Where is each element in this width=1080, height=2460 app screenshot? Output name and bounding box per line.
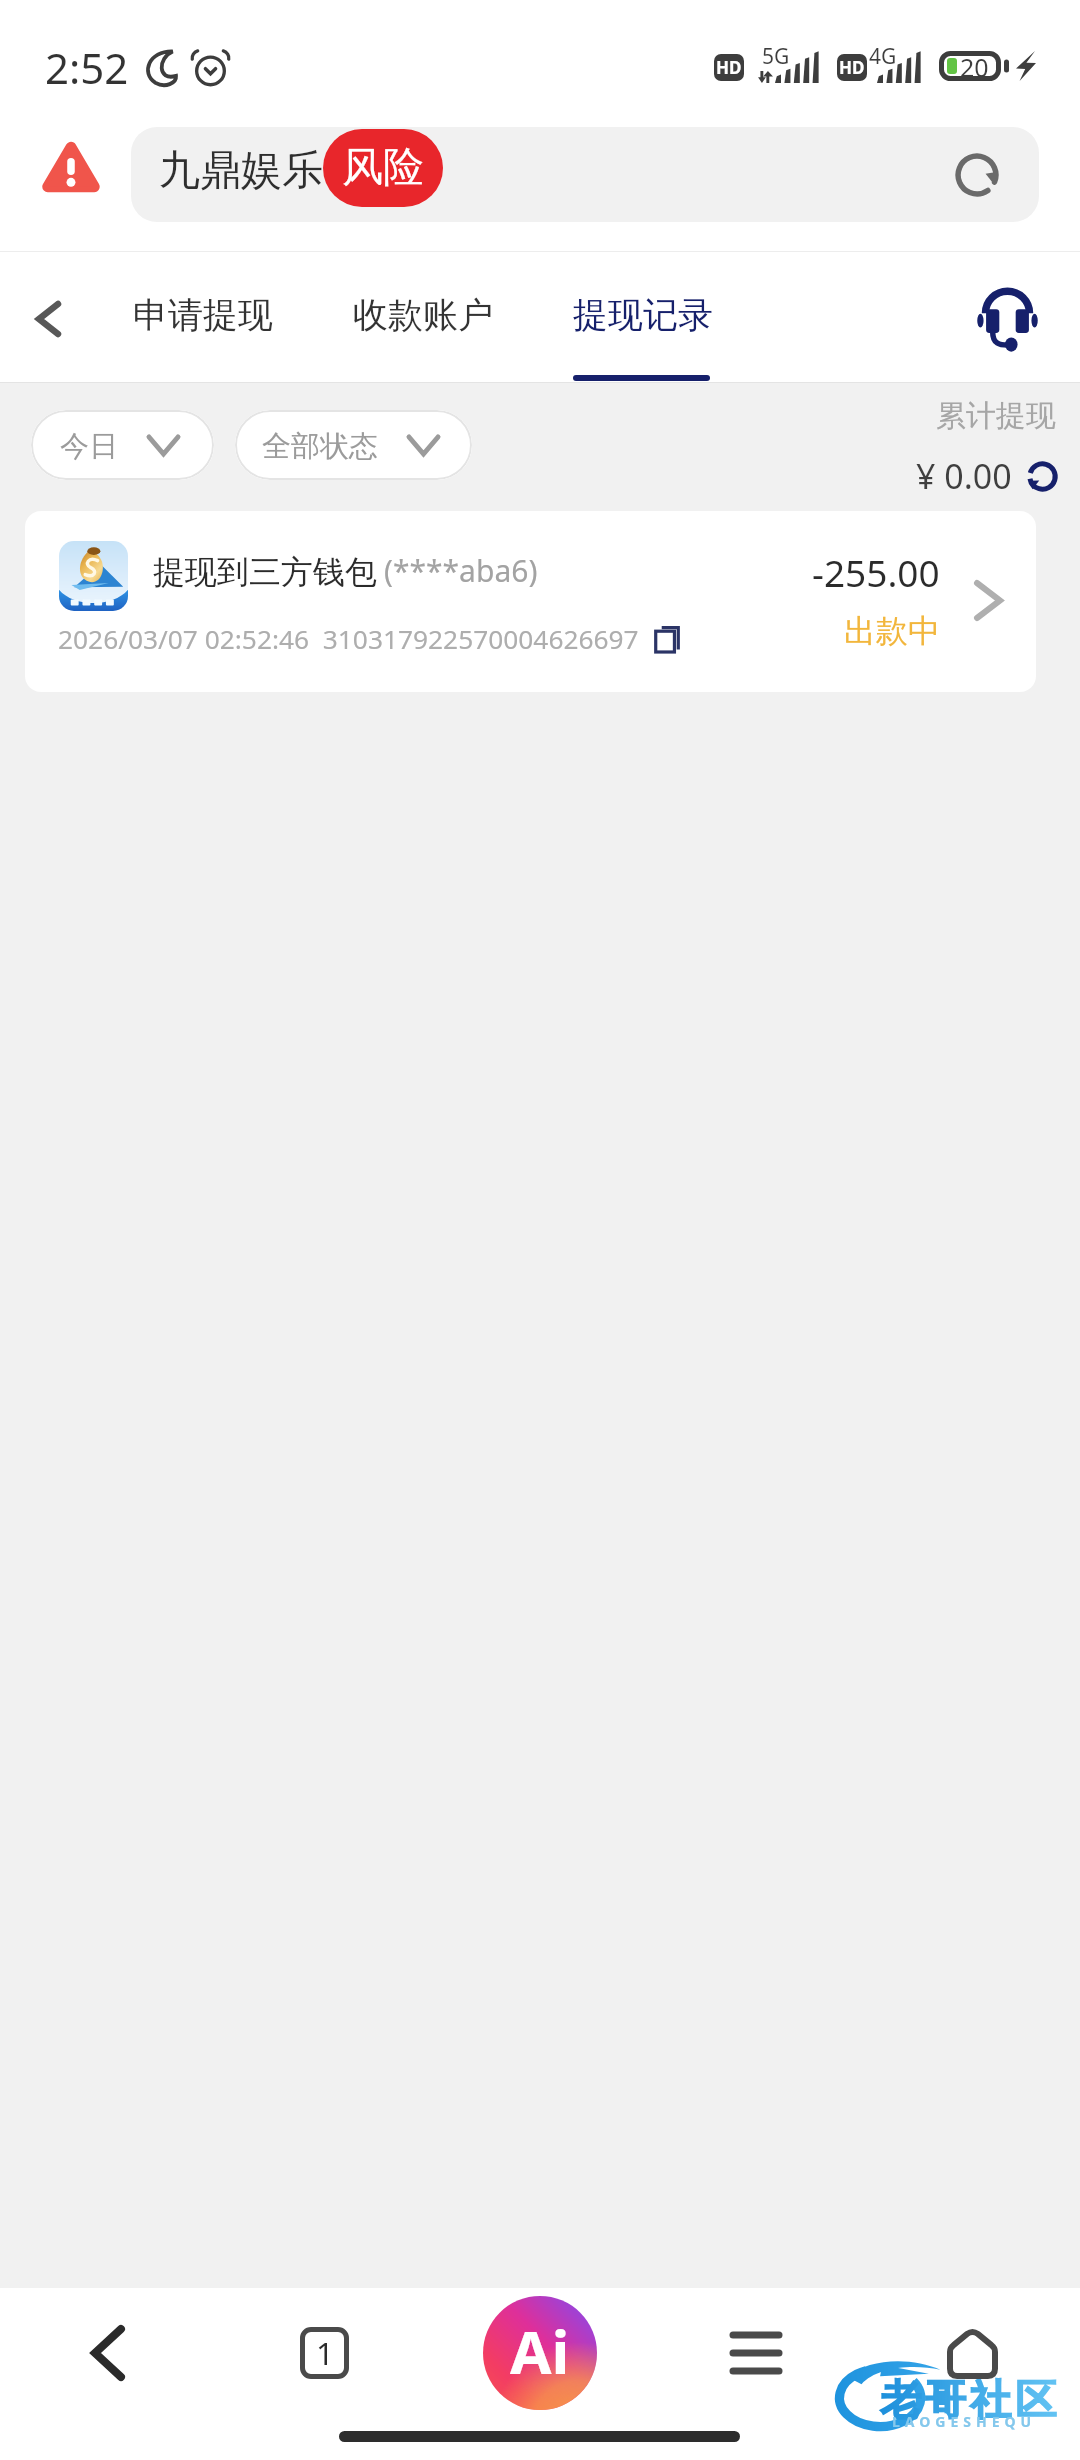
button[interactable]: 提现记录 <box>573 293 713 337</box>
button[interactable]: Menu <box>648 2288 864 2418</box>
button[interactable]: 申请提现 <box>133 293 273 337</box>
staticText: 全部状态 <box>262 428 378 465</box>
staticText: LAOGESHEQU <box>892 2412 1037 2431</box>
staticText: Ai <box>510 2310 570 2392</box>
staticText: (****aba6) <box>384 550 538 591</box>
staticText: 提现记录 <box>573 293 713 337</box>
staticText: 1 <box>316 2332 334 2374</box>
staticText: 今日 <box>60 428 118 465</box>
button[interactable]: Refresh total <box>1023 457 1061 495</box>
staticText: 收款账户 <box>353 293 493 337</box>
button[interactable]: Home <box>864 2288 1080 2418</box>
button[interactable]: 今日 <box>31 410 214 480</box>
staticText: HD <box>839 56 865 79</box>
staticText: 累计提现 <box>936 397 1056 435</box>
button[interactable]: 全部状态 <box>235 410 472 480</box>
button[interactable]: 收款账户 <box>353 293 493 337</box>
staticText: 出款中 <box>844 611 940 651</box>
staticText: 九鼎娱乐 <box>159 145 323 197</box>
staticText: 提现到三方钱包 <box>153 552 377 592</box>
staticText: 风险 <box>342 142 424 194</box>
button[interactable]: Customer service <box>960 275 1054 363</box>
staticText: ¥ 0.00 <box>916 453 1012 499</box>
button[interactable]: Refresh page <box>949 147 1005 203</box>
button[interactable]: 九鼎娱乐 <box>131 127 1039 222</box>
button[interactable]: Tabs <box>216 2288 432 2418</box>
staticText: 20 <box>960 50 989 80</box>
button[interactable]: AI assistant <box>432 2288 648 2418</box>
staticText: 4G <box>869 42 897 71</box>
staticText: 2:52 <box>45 39 129 96</box>
button[interactable]: Back <box>0 2288 216 2418</box>
staticText: HD <box>716 56 742 79</box>
button[interactable]: 提现到三方钱包 <box>25 511 1036 692</box>
staticText: 2026/03/07 02:52:46 31031792257000462669… <box>58 621 639 657</box>
staticText: 申请提现 <box>133 293 273 337</box>
staticText: 老哥社区 <box>878 2375 1058 2427</box>
staticText: -255.00 <box>812 547 940 597</box>
button[interactable]: Security warning <box>42 142 100 193</box>
button[interactable]: Back <box>16 274 76 362</box>
staticText: 5G <box>762 42 790 71</box>
